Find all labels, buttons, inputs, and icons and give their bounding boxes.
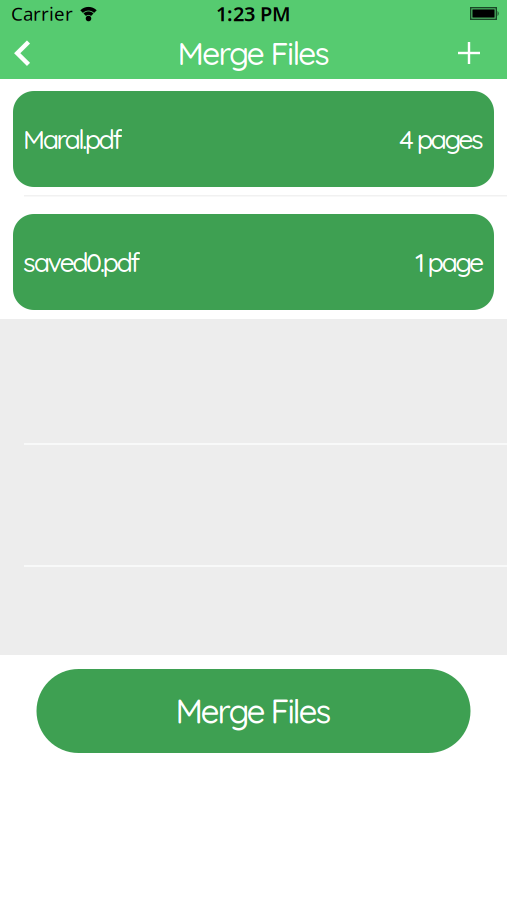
button[interactable]: saved0.pdf [13, 214, 494, 310]
staticText: saved0.pdf [23, 245, 140, 279]
staticText: 1 page [415, 245, 484, 279]
button[interactable]: Back [0, 27, 31, 79]
button[interactable]: Merge Files [36, 669, 470, 753]
staticText: Merge Files [175, 690, 331, 732]
staticText: Merge Files [177, 33, 329, 73]
button[interactable]: Add file [458, 27, 507, 79]
button[interactable]: Maral.pdf [13, 91, 494, 187]
staticText: Maral.pdf [23, 122, 122, 156]
staticText: 1:23 PM [216, 0, 291, 27]
staticText: 4 pages [399, 122, 484, 156]
staticText: Carrier [11, 1, 73, 26]
